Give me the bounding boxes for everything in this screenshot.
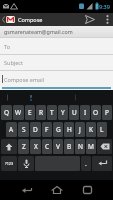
button[interactable]: J bbox=[75, 122, 85, 137]
staticText: L bbox=[100, 125, 104, 134]
button[interactable]: P bbox=[102, 105, 112, 120]
button[interactable]: U bbox=[69, 105, 79, 120]
staticText: S bbox=[22, 125, 26, 134]
staticText: H bbox=[67, 125, 72, 134]
button[interactable]: S bbox=[18, 122, 29, 137]
button[interactable]: C bbox=[42, 139, 52, 154]
button[interactable]: Q bbox=[1, 105, 12, 120]
button[interactable] bbox=[1, 139, 17, 154]
staticText: 9:39 bbox=[99, 3, 110, 10]
staticText: D bbox=[33, 125, 38, 134]
button[interactable]: R bbox=[36, 105, 46, 120]
button[interactable]: ?123 bbox=[1, 156, 17, 171]
staticText: X bbox=[34, 142, 38, 151]
staticText: M bbox=[88, 142, 94, 151]
staticText: C bbox=[45, 142, 50, 151]
staticText: O bbox=[93, 108, 99, 117]
staticText: Subject bbox=[4, 59, 23, 66]
button[interactable]: D bbox=[30, 122, 41, 137]
staticText: . bbox=[85, 159, 87, 168]
staticText: E bbox=[28, 108, 32, 117]
button[interactable]: Subject bbox=[0, 55, 113, 70]
staticText: B bbox=[67, 142, 72, 151]
button[interactable] bbox=[18, 156, 34, 171]
button[interactable]: X bbox=[30, 139, 41, 154]
button[interactable]: L bbox=[97, 122, 107, 137]
button[interactable] bbox=[42, 180, 72, 200]
button[interactable]: Compose bbox=[0, 13, 43, 26]
button[interactable]: G bbox=[53, 122, 63, 137]
button[interactable]: A bbox=[6, 122, 17, 137]
button[interactable]: M bbox=[86, 139, 96, 154]
button[interactable]: Z bbox=[18, 139, 29, 154]
button[interactable] bbox=[79, 13, 101, 26]
staticText: F bbox=[45, 125, 49, 134]
button[interactable]: H bbox=[64, 122, 74, 137]
staticText: U bbox=[72, 108, 77, 117]
button[interactable]: N bbox=[75, 139, 85, 154]
staticText: Z bbox=[22, 142, 26, 151]
button[interactable]: To bbox=[0, 38, 113, 54]
button[interactable]: O bbox=[91, 105, 101, 120]
staticText: Y bbox=[61, 108, 65, 117]
staticText: W bbox=[15, 108, 22, 117]
button[interactable] bbox=[101, 13, 113, 26]
staticText: Compose email bbox=[4, 76, 44, 83]
button[interactable]: K bbox=[86, 122, 96, 137]
staticText: I bbox=[84, 108, 87, 117]
staticText: G bbox=[56, 125, 61, 134]
staticText: N bbox=[78, 142, 83, 151]
button[interactable]: E bbox=[25, 105, 35, 120]
button[interactable] bbox=[12, 180, 42, 200]
staticText: Compose bbox=[18, 16, 43, 23]
staticText: R bbox=[39, 108, 44, 117]
button[interactable]: V bbox=[53, 139, 63, 154]
button[interactable] bbox=[72, 180, 102, 200]
staticText: J bbox=[79, 125, 81, 134]
staticText: T bbox=[50, 108, 54, 117]
staticText: A bbox=[9, 125, 14, 134]
staticText: P bbox=[105, 108, 109, 117]
staticText: K bbox=[89, 125, 94, 134]
button[interactable] bbox=[92, 156, 112, 171]
staticText: Q bbox=[4, 108, 10, 117]
button[interactable]: . bbox=[81, 156, 91, 171]
button[interactable]: Y bbox=[58, 105, 68, 120]
button[interactable]: W bbox=[13, 105, 24, 120]
staticText: To bbox=[4, 43, 11, 50]
staticText: V bbox=[56, 142, 60, 151]
staticText: ?123 bbox=[5, 161, 14, 166]
button[interactable]: Compose email bbox=[0, 71, 113, 90]
staticText: gsmarenateam@gmail.com bbox=[4, 28, 73, 35]
button[interactable]: I bbox=[80, 105, 90, 120]
button[interactable]: B bbox=[64, 139, 74, 154]
button[interactable]: T bbox=[47, 105, 57, 120]
button[interactable]: F bbox=[42, 122, 52, 137]
button[interactable] bbox=[97, 139, 112, 154]
button[interactable]: gsmarenateam@gmail.com bbox=[0, 26, 113, 37]
